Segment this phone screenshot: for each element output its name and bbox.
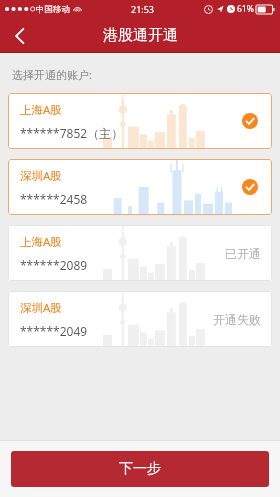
staticText: ******7852（主） <box>20 125 124 141</box>
staticText: 下一步 <box>119 460 161 478</box>
staticText: 已开通 <box>225 246 261 261</box>
staticText: ******2458 <box>20 191 88 207</box>
button[interactable]: 上海A股 <box>8 93 272 149</box>
button[interactable]: 深圳A股 <box>8 291 272 347</box>
staticText: 21:53 <box>131 3 155 15</box>
staticText: 选择开通的账户: <box>12 67 92 82</box>
staticText: 上海A股 <box>20 102 62 118</box>
staticText: ******2049 <box>20 323 88 339</box>
staticText: 深圳A股 <box>20 300 62 316</box>
staticText: 港股通开通 <box>103 26 178 45</box>
staticText: ******2089 <box>20 257 88 273</box>
button[interactable]: 上海A股 <box>8 225 272 281</box>
button[interactable]: 下一步 <box>11 451 269 487</box>
button[interactable]: 深圳A股 <box>8 159 272 215</box>
staticText: 中国移动 <box>36 4 70 15</box>
staticText: 深圳A股 <box>20 168 62 184</box>
staticText: 开通失败 <box>213 312 261 327</box>
button[interactable]: Back <box>0 18 40 53</box>
staticText: 61% <box>237 3 254 15</box>
staticText: 上海A股 <box>20 234 62 250</box>
